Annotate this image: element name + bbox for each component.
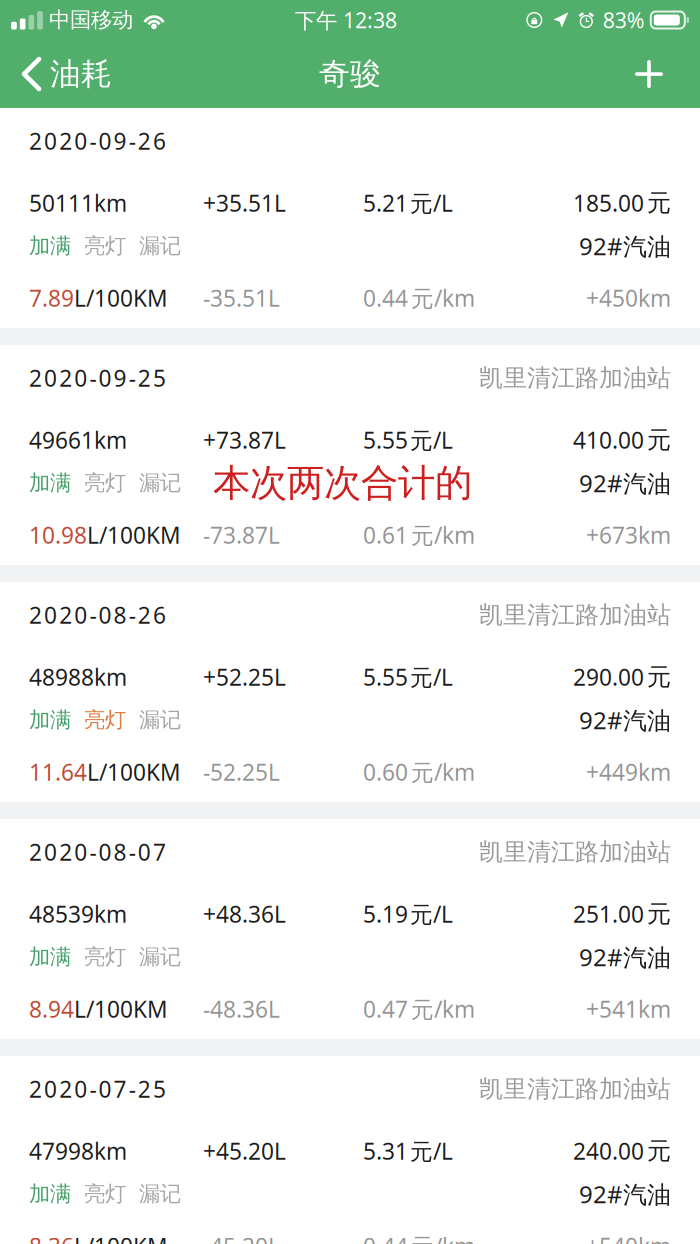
button[interactable]: 油耗 (0, 40, 128, 108)
staticText: 加满 (29, 470, 71, 496)
staticText: 2020-08-07 (29, 837, 166, 867)
staticText: +35.51L (203, 188, 286, 218)
staticText: 漏记 (139, 944, 181, 970)
staticText: L/100KM (87, 757, 181, 787)
staticText: L/100KM (87, 520, 181, 550)
staticText: 0.61 (363, 520, 408, 550)
button[interactable]: 添加 (613, 40, 700, 108)
staticText: 亮灯 (84, 944, 126, 970)
staticText: +73.87L (203, 425, 286, 455)
staticText: 加满 (29, 944, 71, 970)
staticText: +52.25L (203, 662, 286, 692)
staticText: 47998km (29, 1136, 127, 1166)
staticText: +45.20L (203, 1136, 286, 1166)
staticText: 185.00 (573, 188, 644, 218)
staticText: 元/km (411, 757, 475, 787)
staticText: 元/L (410, 662, 453, 692)
staticText: 48539km (29, 899, 127, 929)
staticText: 元/km (411, 520, 475, 550)
staticText: 7.89 (29, 283, 74, 313)
staticText: 漏记 (139, 233, 181, 259)
staticText: 5.21 (363, 188, 408, 218)
staticText: 元/L (410, 1136, 453, 1166)
staticText: 亮灯 (84, 707, 126, 733)
staticText: 5.55 (363, 425, 408, 455)
staticText: L/100KM (74, 1231, 168, 1244)
staticText: +541km (586, 994, 671, 1024)
staticText: 2020-09-26 (29, 126, 166, 156)
staticText: -35.51L (203, 283, 280, 313)
staticText: 元/km (411, 994, 475, 1024)
staticText: 2020-08-26 (29, 600, 166, 630)
staticText: 240.00 (573, 1136, 644, 1166)
staticText: 亮灯 (84, 233, 126, 259)
staticText: 亮灯 (84, 1181, 126, 1207)
staticText: -48.36L (203, 994, 280, 1024)
staticText: 251.00 (573, 899, 644, 929)
staticText: 本次两次合计的 (213, 460, 472, 506)
staticText: 元 (647, 899, 671, 929)
button[interactable]: 2020-08-26 (0, 582, 700, 802)
staticText: 48988km (29, 662, 127, 692)
staticText: 凯里清江路加油站 (479, 837, 671, 867)
staticText: 奇骏 (319, 55, 381, 93)
staticText: 凯里清江路加油站 (479, 363, 671, 393)
staticText: 元/km (411, 283, 475, 313)
staticText: 11.64 (29, 757, 87, 787)
staticText: 元/km (411, 1231, 475, 1244)
staticText: 元 (647, 662, 671, 692)
staticText: 92#汽油 (579, 704, 671, 736)
staticText: L/100KM (74, 994, 168, 1024)
staticText: 中国移动 (49, 7, 133, 33)
button[interactable]: 2020-07-25 (0, 1056, 700, 1244)
staticText: L/100KM (74, 283, 168, 313)
staticText: 加满 (29, 707, 71, 733)
staticText: 漏记 (139, 1181, 181, 1207)
staticText: 92#汽油 (579, 941, 671, 973)
staticText: 加满 (29, 233, 71, 259)
staticText: 8.36 (29, 1231, 74, 1244)
staticText: 元 (647, 188, 671, 218)
staticText: 5.55 (363, 662, 408, 692)
button[interactable]: 2020-08-07 (0, 819, 700, 1039)
staticText: +540km (586, 1231, 671, 1244)
staticText: 10.98 (29, 520, 87, 550)
staticText: 元/L (410, 188, 453, 218)
staticText: 凯里清江路加油站 (479, 1074, 671, 1104)
staticText: 油耗 (50, 55, 112, 93)
staticText: 8.94 (29, 994, 74, 1024)
staticText: 290.00 (573, 662, 644, 692)
staticText: 83% (603, 6, 645, 34)
staticText: 漏记 (139, 707, 181, 733)
staticText: 92#汽油 (579, 467, 671, 499)
staticText: 0.44 (363, 1231, 408, 1244)
staticText: 0.47 (363, 994, 408, 1024)
staticText: 5.31 (363, 1136, 408, 1166)
staticText: 亮灯 (84, 470, 126, 496)
staticText: 下午 12:38 (295, 6, 397, 34)
button[interactable]: 2020-09-25 (0, 345, 700, 565)
staticText: 410.00 (573, 425, 644, 455)
staticText: -73.87L (203, 520, 280, 550)
staticText: 0.44 (363, 283, 408, 313)
staticText: 0.60 (363, 757, 408, 787)
staticText: 元/L (410, 425, 453, 455)
staticText: +450km (586, 283, 671, 313)
staticText: 加满 (29, 1181, 71, 1207)
staticText: +673km (586, 520, 671, 550)
staticText: -45.20L (203, 1231, 280, 1244)
staticText: 92#汽油 (579, 1178, 671, 1210)
staticText: 元 (647, 425, 671, 455)
staticText: 元 (647, 1136, 671, 1166)
staticText: 2020-09-25 (29, 363, 166, 393)
staticText: 元/L (410, 899, 453, 929)
button[interactable]: 2020-09-26 (0, 108, 700, 328)
staticText: 50111km (29, 188, 127, 218)
staticText: 凯里清江路加油站 (479, 600, 671, 630)
staticText: 92#汽油 (579, 230, 671, 262)
staticText: -52.25L (203, 757, 280, 787)
staticText: +449km (586, 757, 671, 787)
staticText: 漏记 (139, 470, 181, 496)
staticText: +48.36L (203, 899, 286, 929)
staticText: 2020-07-25 (29, 1074, 166, 1104)
